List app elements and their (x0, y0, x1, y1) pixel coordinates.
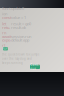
staticText: value = 1 (11, 15, 26, 20)
button[interactable]: Continue (30, 65, 40, 69)
staticText: result.ok (11, 25, 26, 30)
staticText: session.run (11, 34, 31, 39)
staticText: Continue (30, 63, 39, 70)
staticText: export (2, 37, 11, 48)
staticText: await (2, 34, 11, 39)
staticText: return (2, 25, 10, 35)
staticText: result = go() (11, 21, 31, 26)
staticText: the quick brown fox jumps (2, 53, 39, 56)
staticText: const (2, 15, 11, 20)
staticText: over the lazy dog and (2, 57, 32, 60)
button[interactable]: run (3, 47, 8, 50)
staticText: let (2, 21, 6, 26)
staticText: keeps running (2, 61, 23, 65)
staticText: function (2, 6, 11, 16)
staticText: update() (11, 6, 24, 11)
staticText: run (3, 47, 8, 50)
staticText: default app (11, 37, 29, 43)
